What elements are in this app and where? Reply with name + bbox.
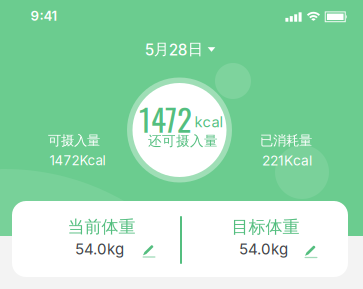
staticText: 9:41 bbox=[30, 8, 57, 24]
button[interactable]: 目标体重 bbox=[180, 201, 348, 277]
staticText: 可摄入量 bbox=[48, 132, 100, 149]
button[interactable]: 当前体重 bbox=[12, 201, 180, 277]
staticText: 54.0kg bbox=[75, 240, 124, 258]
staticText: kcal bbox=[194, 113, 223, 131]
staticText: 5月28日 bbox=[145, 40, 203, 59]
staticText: 当前体重 bbox=[67, 216, 135, 238]
staticText: 已消耗量 bbox=[260, 132, 312, 149]
staticText: 1472 bbox=[139, 96, 192, 142]
staticText: 目标体重 bbox=[232, 216, 300, 238]
staticText: 221Kcal bbox=[262, 152, 312, 169]
staticText: 54.0kg bbox=[239, 240, 288, 258]
staticText: 1472Kcal bbox=[49, 152, 105, 168]
button[interactable]: 5月28日 bbox=[145, 40, 215, 59]
staticText: 还可摄入量 bbox=[148, 132, 218, 149]
